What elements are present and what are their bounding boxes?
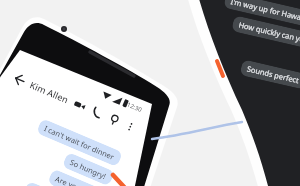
staticText: So hungry! (68, 157, 108, 181)
button[interactable]: Are you in 😊 (47, 168, 107, 186)
button[interactable]: More options (123, 119, 137, 134)
staticText: I'm way up for Hawaiian (230, 0, 300, 25)
button[interactable]: Call (90, 105, 104, 120)
button[interactable]: Back (11, 71, 28, 88)
staticText: Are you in 😊 (54, 174, 100, 186)
staticText: 12:30 (126, 101, 144, 114)
staticText: Kim Allen (28, 78, 71, 105)
button[interactable]: I'm way up for Hawaiian (223, 0, 300, 29)
button[interactable]: How quickly can you (231, 15, 300, 50)
button[interactable]: Search (107, 113, 122, 127)
button[interactable]: Sounds perfect (239, 59, 300, 90)
button[interactable]: Video call (72, 98, 87, 112)
button[interactable]: Gallery (182, 118, 202, 138)
button[interactable]: I can't wait for dinner (36, 118, 123, 167)
staticText: I can't wait for dinner (43, 123, 116, 162)
button[interactable]: So hungry! (62, 152, 115, 186)
button[interactable]: What do you want (22, 181, 98, 186)
staticText: Sounds perfect (246, 63, 300, 85)
button[interactable]: Add (157, 111, 180, 134)
button[interactable]: Photo attachment (202, 117, 243, 152)
staticText: How quickly can you (238, 19, 300, 45)
